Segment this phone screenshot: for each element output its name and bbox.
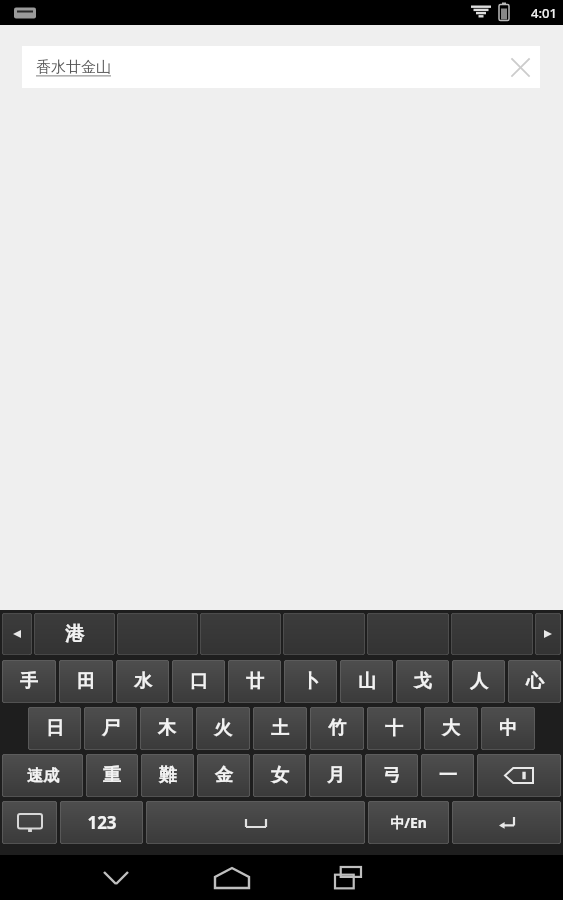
staticText: 一	[439, 764, 457, 787]
button[interactable]: 月	[309, 754, 362, 797]
button[interactable]: 田	[59, 660, 113, 703]
button[interactable]: 重	[86, 754, 138, 797]
button[interactable]: Hide keyboard	[80, 855, 152, 900]
staticText: 大	[442, 717, 460, 740]
staticText: 香水廿金山	[36, 58, 500, 77]
staticText: 手	[20, 670, 38, 693]
button[interactable]: 大	[424, 707, 478, 750]
staticText: 尸	[102, 717, 120, 740]
button[interactable]: 卜	[284, 660, 337, 703]
button[interactable]: 山	[340, 660, 393, 703]
button[interactable]: 速成	[2, 754, 83, 797]
button[interactable]: 尸	[84, 707, 137, 750]
button[interactable]: 金	[197, 754, 250, 797]
button[interactable]: 木	[140, 707, 193, 750]
button[interactable]: Recents	[312, 855, 384, 900]
button[interactable]: 港	[34, 613, 115, 655]
button[interactable]: More candidates	[535, 613, 561, 655]
button[interactable]: 火	[196, 707, 250, 750]
button[interactable]: 一	[421, 754, 474, 797]
staticText: 女	[271, 764, 289, 787]
button[interactable]: 廿	[228, 660, 281, 703]
button[interactable]: 戈	[396, 660, 449, 703]
button[interactable]: 日	[28, 707, 81, 750]
button[interactable]: 手	[2, 660, 56, 703]
staticText: 山	[358, 670, 376, 693]
staticText: 水	[134, 670, 152, 693]
button[interactable]: 難	[141, 754, 194, 797]
staticText: 123	[87, 811, 117, 834]
button[interactable]: Clear	[500, 47, 540, 87]
button[interactable]: 人	[452, 660, 505, 703]
staticText: 心	[526, 670, 544, 693]
staticText: 木	[158, 717, 176, 740]
staticText: 速成	[27, 766, 59, 786]
staticText: 竹	[328, 717, 346, 740]
button[interactable]: Candidate	[451, 613, 533, 655]
staticText: 火	[214, 717, 232, 740]
button[interactable]: 口	[172, 660, 225, 703]
button[interactable]: Home	[196, 855, 268, 900]
staticText: 中/En	[390, 813, 427, 832]
staticText: 人	[470, 670, 488, 693]
button[interactable]: 123	[60, 801, 143, 844]
staticText: 弓	[383, 764, 401, 787]
staticText: 月	[327, 764, 345, 787]
button[interactable]: 香水廿金山	[22, 46, 540, 88]
button[interactable]: 中	[481, 707, 535, 750]
staticText: 田	[77, 670, 95, 693]
button[interactable]: 竹	[310, 707, 364, 750]
button[interactable]: Candidate	[367, 613, 449, 655]
staticText: 土	[271, 717, 289, 740]
button[interactable]: Candidate	[283, 613, 365, 655]
staticText: 4:01	[531, 4, 557, 22]
staticText: 廿	[246, 670, 264, 693]
button[interactable]: 土	[253, 707, 307, 750]
staticText: 中	[499, 717, 517, 740]
staticText: 港	[65, 622, 84, 646]
staticText: 卜	[302, 670, 320, 693]
button[interactable]: Backspace	[477, 754, 561, 797]
button[interactable]: 水	[116, 660, 169, 703]
button[interactable]: Candidate	[200, 613, 281, 655]
staticText: 難	[159, 764, 177, 787]
button[interactable]: Candidate	[117, 613, 198, 655]
button[interactable]: 十	[367, 707, 421, 750]
button[interactable]: Enter	[452, 801, 561, 844]
button[interactable]: 中/En	[368, 801, 449, 844]
button[interactable]: Previous candidates	[2, 613, 32, 655]
staticText: 重	[103, 764, 121, 787]
staticText: 日	[46, 717, 64, 740]
button[interactable]: 心	[508, 660, 561, 703]
staticText: 戈	[414, 670, 432, 693]
button[interactable]: 弓	[365, 754, 418, 797]
button[interactable]: 女	[253, 754, 306, 797]
staticText: 十	[385, 717, 403, 740]
button[interactable]: Switch keyboard	[2, 801, 57, 844]
staticText: 口	[190, 670, 208, 693]
button[interactable]: Space	[146, 801, 365, 844]
staticText: 金	[215, 764, 233, 787]
